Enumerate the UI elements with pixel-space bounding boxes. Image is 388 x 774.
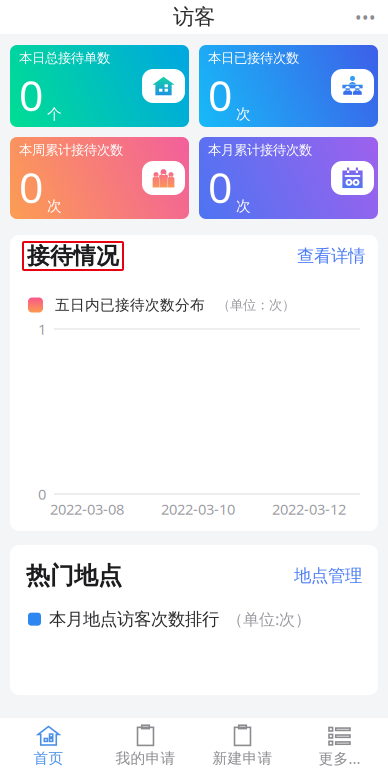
staticText: 个 — [47, 105, 62, 123]
button[interactable]: 本月累计接待次数 — [199, 137, 378, 219]
staticText: 五日内已接待次数分布 — [55, 296, 205, 314]
staticText: 2022-03-08 — [50, 499, 124, 519]
staticText: 热门地点 — [26, 561, 122, 590]
staticText: 0 — [19, 66, 43, 123]
button[interactable]: 我的申请 — [97, 718, 194, 773]
staticText: 更多... — [318, 748, 360, 768]
button[interactable]: 新建申请 — [194, 718, 291, 773]
staticText: 首页 — [33, 749, 63, 767]
staticText: 本月地点访客次数排行 — [49, 608, 219, 630]
staticText: 我的申请 — [115, 749, 175, 767]
staticText: ••• — [355, 5, 376, 28]
staticText: 本月累计接待次数 — [208, 142, 312, 158]
staticText: 本周累计接待次数 — [19, 142, 123, 158]
staticText: 次 — [236, 105, 251, 123]
staticText: （单位：次） — [217, 297, 295, 313]
staticText: 地点管理 — [294, 565, 362, 586]
button[interactable]: 本周累计接待次数 — [10, 137, 189, 219]
staticText: 0 — [38, 484, 46, 504]
staticText: 本日总接待单数 — [19, 50, 110, 66]
button[interactable]: 地点管理 — [294, 565, 362, 586]
staticText: 次 — [236, 197, 251, 215]
button[interactable]: 查看详情 — [297, 245, 365, 267]
button[interactable]: 首页 — [0, 718, 97, 773]
staticText: 2022-03-10 — [161, 499, 235, 519]
staticText: （单位:次） — [227, 608, 311, 630]
staticText: 次 — [47, 197, 62, 215]
staticText: 0 — [208, 66, 232, 123]
button[interactable]: 本日总接待单数 — [10, 45, 189, 127]
staticText: 0 — [208, 158, 232, 215]
button[interactable]: 本日已接待次数 — [199, 45, 378, 127]
staticText: 访客 — [173, 4, 215, 30]
staticText: 本日已接待次数 — [208, 50, 299, 66]
staticText: 1 — [38, 319, 46, 339]
staticText: 查看详情 — [297, 245, 365, 267]
button[interactable]: More options — [343, 0, 388, 36]
staticText: 2022-03-12 — [272, 499, 346, 519]
staticText: 0 — [19, 158, 43, 215]
staticText: 新建申请 — [212, 749, 272, 767]
staticText: 接待情况 — [27, 242, 119, 270]
button[interactable]: 更多... — [291, 717, 388, 774]
